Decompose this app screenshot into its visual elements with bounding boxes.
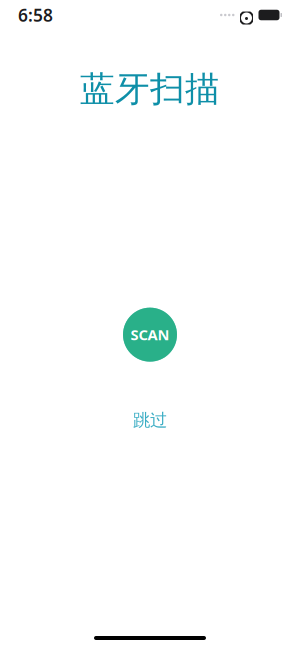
staticText: 跳过 xyxy=(133,410,167,431)
staticText: SCAN xyxy=(130,325,169,344)
button[interactable]: SCAN xyxy=(123,308,177,362)
staticText: 蓝牙扫描 xyxy=(80,68,220,111)
button[interactable]: 跳过 xyxy=(115,402,185,439)
staticText: 6:58 xyxy=(18,3,53,26)
